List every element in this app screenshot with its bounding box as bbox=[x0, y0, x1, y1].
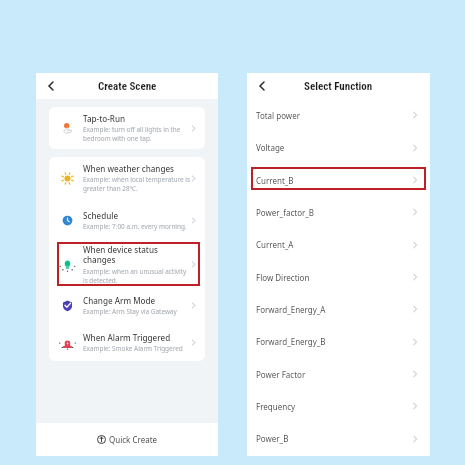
staticText: Power_factor_B bbox=[256, 207, 411, 218]
staticText: bedroom with one tap. bbox=[83, 134, 152, 143]
staticText: Power Factor bbox=[256, 369, 411, 380]
button[interactable]: When device status changes bbox=[49, 241, 205, 287]
button[interactable]: Current_B bbox=[247, 164, 430, 196]
staticText: Total power bbox=[256, 110, 411, 121]
button[interactable]: Forward_Energy_A bbox=[247, 293, 430, 325]
staticText: Forward_Energy_A bbox=[256, 304, 411, 315]
button[interactable]: When weather changes bbox=[49, 157, 205, 199]
staticText: Flow Direction bbox=[256, 272, 411, 283]
button[interactable]: Flow Direction bbox=[247, 261, 430, 293]
button[interactable]: Quick Create bbox=[93, 430, 162, 449]
staticText: Current_A bbox=[256, 239, 411, 250]
button[interactable]: Tap-to-Run bbox=[49, 107, 205, 149]
staticText: Tap-to-Run bbox=[83, 113, 126, 124]
staticText: Schedule bbox=[83, 210, 119, 221]
staticText: Quick Create bbox=[109, 434, 158, 445]
staticText: Current_B bbox=[256, 175, 411, 186]
staticText: Example: when local temperature is bbox=[83, 175, 190, 184]
button[interactable]: Power_factor_B bbox=[247, 196, 430, 228]
staticText: Example: 7:00 a.m. every morning. bbox=[83, 222, 187, 231]
staticText: Voltage bbox=[256, 142, 411, 153]
button[interactable]: Forward_Energy_B bbox=[247, 325, 430, 358]
staticText: Select Function bbox=[304, 80, 373, 93]
staticText: When Alarm Triggered bbox=[83, 332, 171, 343]
button[interactable]: Schedule bbox=[49, 199, 205, 241]
button[interactable]: Voltage bbox=[247, 131, 430, 164]
button[interactable]: Back bbox=[252, 76, 272, 96]
staticText: Example: turn off all lights in the bbox=[83, 125, 181, 134]
staticText: Example: when an unusual activity bbox=[83, 267, 187, 276]
staticText: Power_B bbox=[256, 433, 411, 444]
staticText: Example: Arm Stay via Gateway bbox=[83, 307, 177, 316]
staticText: is detected. bbox=[83, 276, 118, 285]
staticText: greater than 28℃. bbox=[83, 184, 138, 193]
staticText: Example: Smoke Alarm Triggered bbox=[83, 344, 183, 353]
staticText: Forward_Energy_B bbox=[256, 336, 411, 347]
staticText: Change Arm Mode bbox=[83, 295, 156, 306]
staticText: Frequency bbox=[256, 401, 411, 412]
staticText: Create Scene bbox=[98, 80, 157, 93]
button[interactable]: Total power bbox=[247, 99, 430, 131]
staticText: When device status changes bbox=[83, 244, 158, 266]
button[interactable]: Frequency bbox=[247, 390, 430, 422]
button[interactable]: When Alarm Triggered bbox=[49, 324, 205, 361]
button[interactable]: Power Factor bbox=[247, 358, 430, 390]
staticText: When weather changes bbox=[83, 163, 175, 174]
button[interactable]: Change Arm Mode bbox=[49, 287, 205, 324]
button[interactable]: Power_B bbox=[247, 422, 430, 455]
button[interactable]: Current_A bbox=[247, 228, 430, 261]
button[interactable]: Back bbox=[41, 76, 61, 96]
